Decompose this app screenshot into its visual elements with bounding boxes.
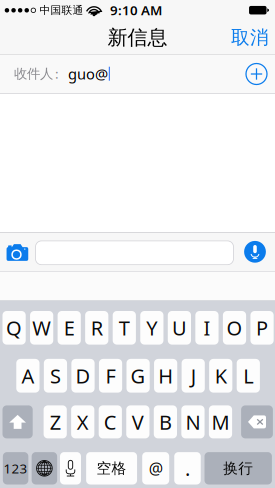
staticText: 123 (4, 459, 28, 477)
button[interactable]: @ (142, 452, 169, 484)
button[interactable]: O (223, 311, 246, 345)
button[interactable]: R (85, 311, 108, 345)
button[interactable]: Dictation (60, 452, 81, 484)
staticText: V (132, 409, 144, 435)
button[interactable]: 换行 (204, 452, 272, 484)
staticText: H (158, 362, 173, 389)
button[interactable]: J (182, 359, 205, 393)
button[interactable]: Delete (241, 405, 273, 438)
button[interactable]: Y (140, 311, 163, 345)
button[interactable]: H (154, 359, 177, 393)
staticText: R (91, 314, 103, 341)
button[interactable]: P (250, 311, 274, 345)
staticText: F (106, 362, 116, 389)
staticText: guo@ (68, 64, 108, 83)
staticText: M (211, 409, 229, 435)
staticText: Q (6, 314, 22, 341)
button[interactable]: B (154, 405, 177, 438)
button[interactable]: 空格 (86, 452, 137, 484)
staticText: A (21, 362, 34, 389)
staticText: 中国联通 (40, 4, 84, 17)
staticText: T (119, 314, 130, 341)
button[interactable]: V (126, 405, 149, 438)
staticText: Z (50, 409, 61, 435)
button[interactable]: iMessage text field (35, 241, 233, 265)
staticText: U (172, 314, 187, 341)
button[interactable]: N (181, 405, 204, 438)
button[interactable]: Q (2, 311, 26, 345)
button[interactable]: Shift (2, 405, 33, 438)
button[interactable]: A (16, 359, 39, 393)
staticText: X (77, 409, 89, 435)
button[interactable]: . (174, 452, 201, 484)
button[interactable]: U (168, 311, 191, 345)
button[interactable]: L (237, 359, 260, 393)
button[interactable]: Z (44, 405, 67, 438)
staticText: G (131, 362, 146, 389)
button[interactable]: G (126, 359, 150, 393)
staticText: O (226, 314, 242, 341)
button[interactable]: T (113, 311, 136, 345)
button[interactable]: S (44, 359, 67, 393)
staticText: 收件人 (14, 65, 53, 82)
staticText: 换行 (223, 459, 253, 477)
staticText: 9:10 AM (110, 1, 162, 19)
button[interactable]: D (71, 359, 95, 393)
staticText: N (185, 409, 200, 435)
staticText: J (191, 362, 196, 389)
staticText: B (159, 409, 172, 435)
staticText: L (243, 362, 253, 389)
staticText: . (185, 455, 190, 482)
button[interactable]: I (195, 311, 218, 345)
staticText: K (215, 362, 227, 389)
button[interactable]: M (209, 405, 232, 438)
staticText: P (256, 314, 268, 341)
staticText: C (104, 409, 117, 435)
staticText: 取消 (231, 26, 269, 49)
staticText: D (75, 362, 90, 389)
button[interactable]: E (58, 311, 81, 345)
button[interactable]: C (99, 405, 122, 438)
button[interactable]: 123 (3, 452, 28, 484)
staticText: : (55, 65, 59, 82)
button[interactable]: Dictation (240, 237, 270, 267)
staticText: I (203, 314, 210, 341)
staticText: S (50, 362, 61, 389)
button[interactable]: Add contact (239, 57, 273, 91)
button[interactable]: Camera (1, 237, 33, 267)
staticText: 空格 (97, 459, 127, 477)
staticText: @ (149, 458, 163, 479)
staticText: Y (146, 314, 157, 341)
button[interactable]: K (209, 359, 232, 393)
staticText: 新信息 (107, 25, 167, 50)
button[interactable]: X (71, 405, 94, 438)
button[interactable]: F (99, 359, 122, 393)
button[interactable]: 取消 (228, 21, 272, 53)
button[interactable]: W (30, 311, 53, 345)
button[interactable]: Next keyboard (32, 452, 57, 484)
staticText: W (32, 314, 51, 341)
staticText: E (64, 314, 75, 341)
